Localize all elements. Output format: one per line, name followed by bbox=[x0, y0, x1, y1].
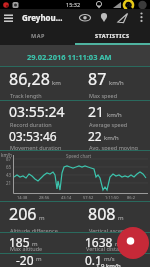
staticText: 808 bbox=[88, 203, 116, 225]
button[interactable] bbox=[0, 9, 17, 26]
staticText: m/s bbox=[104, 255, 115, 263]
button[interactable]: 185 bbox=[0, 233, 75, 253]
staticText: 03:53:46 bbox=[9, 128, 57, 144]
button[interactable]: 1638 bbox=[75, 233, 150, 253]
button[interactable]: 03:55:24 bbox=[0, 102, 75, 150]
button[interactable]: 0.1 bbox=[75, 254, 150, 267]
staticText: m bbox=[39, 214, 45, 222]
staticText: km bbox=[52, 79, 61, 87]
button[interactable]: 87 bbox=[75, 68, 150, 100]
button[interactable]: STATISTICS bbox=[75, 26, 150, 45]
staticText: m bbox=[36, 255, 42, 263]
staticText: 0.1 bbox=[85, 252, 102, 265]
staticText: m bbox=[32, 240, 38, 248]
button[interactable]: 86,28 bbox=[0, 68, 75, 100]
staticText: 22 bbox=[88, 128, 102, 144]
staticText: km/h bbox=[1, 152, 13, 158]
staticText: Max speed bbox=[89, 92, 118, 99]
staticText: 87 bbox=[88, 68, 107, 90]
staticText: 86:2 bbox=[127, 195, 135, 200]
staticText: 28:56 bbox=[39, 195, 50, 200]
staticText: km/h bbox=[109, 79, 124, 87]
staticText: km/h bbox=[107, 111, 122, 119]
staticText: Average speed bbox=[89, 121, 128, 128]
staticText: STATISTICS bbox=[95, 32, 130, 39]
staticText: 86,28 bbox=[9, 68, 50, 90]
staticText: 185 bbox=[9, 234, 30, 250]
staticText: 43:14 bbox=[61, 195, 72, 200]
staticText: 29.02.2016 11:11:03 AM bbox=[27, 52, 112, 62]
staticText: Avg. speed moving bbox=[89, 144, 138, 150]
staticText: 43 bbox=[6, 172, 12, 178]
staticText: 87 bbox=[6, 156, 12, 162]
staticText: Movement duration bbox=[10, 144, 62, 150]
staticText: 03:55:24 bbox=[9, 102, 65, 121]
staticText: 1.9 km/h bbox=[96, 262, 121, 267]
staticText: MAP bbox=[31, 32, 45, 39]
staticText: 65 bbox=[6, 164, 12, 170]
staticText: m bbox=[118, 214, 124, 222]
staticText: Greyhou... bbox=[22, 12, 63, 23]
button[interactable]: MAP bbox=[0, 26, 75, 45]
staticText: 57:52 bbox=[83, 195, 94, 200]
staticText: m bbox=[115, 240, 121, 248]
staticText: Track length bbox=[10, 92, 42, 99]
button[interactable] bbox=[117, 227, 149, 259]
staticText: Altitude difference bbox=[10, 227, 58, 232]
staticText: Record duration bbox=[10, 121, 52, 128]
button[interactable]: 21 bbox=[75, 102, 150, 150]
staticText: -20 bbox=[16, 252, 34, 265]
staticText: 1638 bbox=[85, 234, 113, 250]
staticText: 21 bbox=[88, 102, 105, 121]
button[interactable]: 206 bbox=[0, 203, 75, 232]
button[interactable]: -20 bbox=[0, 254, 75, 267]
staticText: Vertical ascent bbox=[89, 227, 127, 232]
staticText: 206 bbox=[9, 203, 37, 225]
staticText: Vertical distance bbox=[86, 245, 129, 252]
staticText: 14:38 bbox=[17, 195, 28, 200]
staticText: Speed chart bbox=[66, 153, 92, 159]
staticText: Max altitude bbox=[10, 245, 43, 252]
staticText: 15:32 bbox=[66, 1, 81, 8]
staticText: km/h bbox=[104, 134, 119, 142]
staticText: 21 bbox=[6, 180, 12, 186]
staticText: 36 bbox=[126, 2, 132, 9]
staticText: 1:11:50 bbox=[105, 195, 119, 200]
button[interactable]: 808 bbox=[75, 203, 150, 232]
